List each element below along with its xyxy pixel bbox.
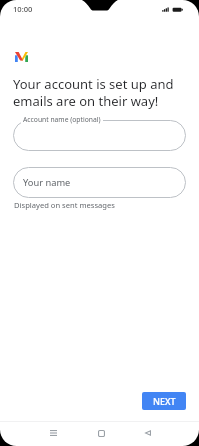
button[interactable]: Back bbox=[138, 425, 158, 441]
button[interactable]: Home bbox=[91, 425, 111, 441]
button[interactable] bbox=[13, 120, 186, 151]
staticText: Your account is set up and emails are on… bbox=[13, 75, 174, 110]
button[interactable] bbox=[13, 167, 186, 198]
button[interactable]: Recent apps bbox=[43, 425, 63, 441]
staticText: 10:00 bbox=[13, 4, 33, 14]
button[interactable]: NEXT bbox=[142, 392, 186, 410]
staticText: NEXT bbox=[153, 395, 176, 407]
staticText: Account name (optional) bbox=[23, 115, 101, 124]
staticText: Your name bbox=[23, 176, 71, 189]
staticText: Displayed on sent messages bbox=[14, 200, 115, 210]
